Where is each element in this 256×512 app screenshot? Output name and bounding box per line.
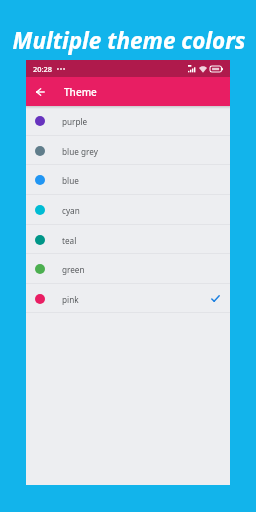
- staticText: Theme: [64, 85, 97, 99]
- staticText: 20:28: [33, 64, 52, 74]
- staticText: Multiple theme colors: [1, 25, 256, 56]
- button[interactable]: green: [26, 254, 230, 283]
- staticText: blue: [62, 175, 79, 186]
- staticText: pink: [62, 294, 79, 305]
- button[interactable]: blue: [26, 165, 230, 194]
- button[interactable]: cyan: [26, 195, 230, 224]
- staticText: teal: [62, 235, 77, 246]
- staticText: purple: [62, 116, 88, 127]
- staticText: blue grey: [62, 146, 98, 157]
- button[interactable]: teal: [26, 225, 230, 254]
- button[interactable]: Back: [31, 82, 50, 101]
- staticText: green: [62, 264, 85, 275]
- button[interactable]: purple: [26, 106, 230, 135]
- button[interactable]: blue grey: [26, 136, 230, 165]
- staticText: cyan: [62, 205, 80, 216]
- button[interactable]: pink: [26, 284, 230, 313]
